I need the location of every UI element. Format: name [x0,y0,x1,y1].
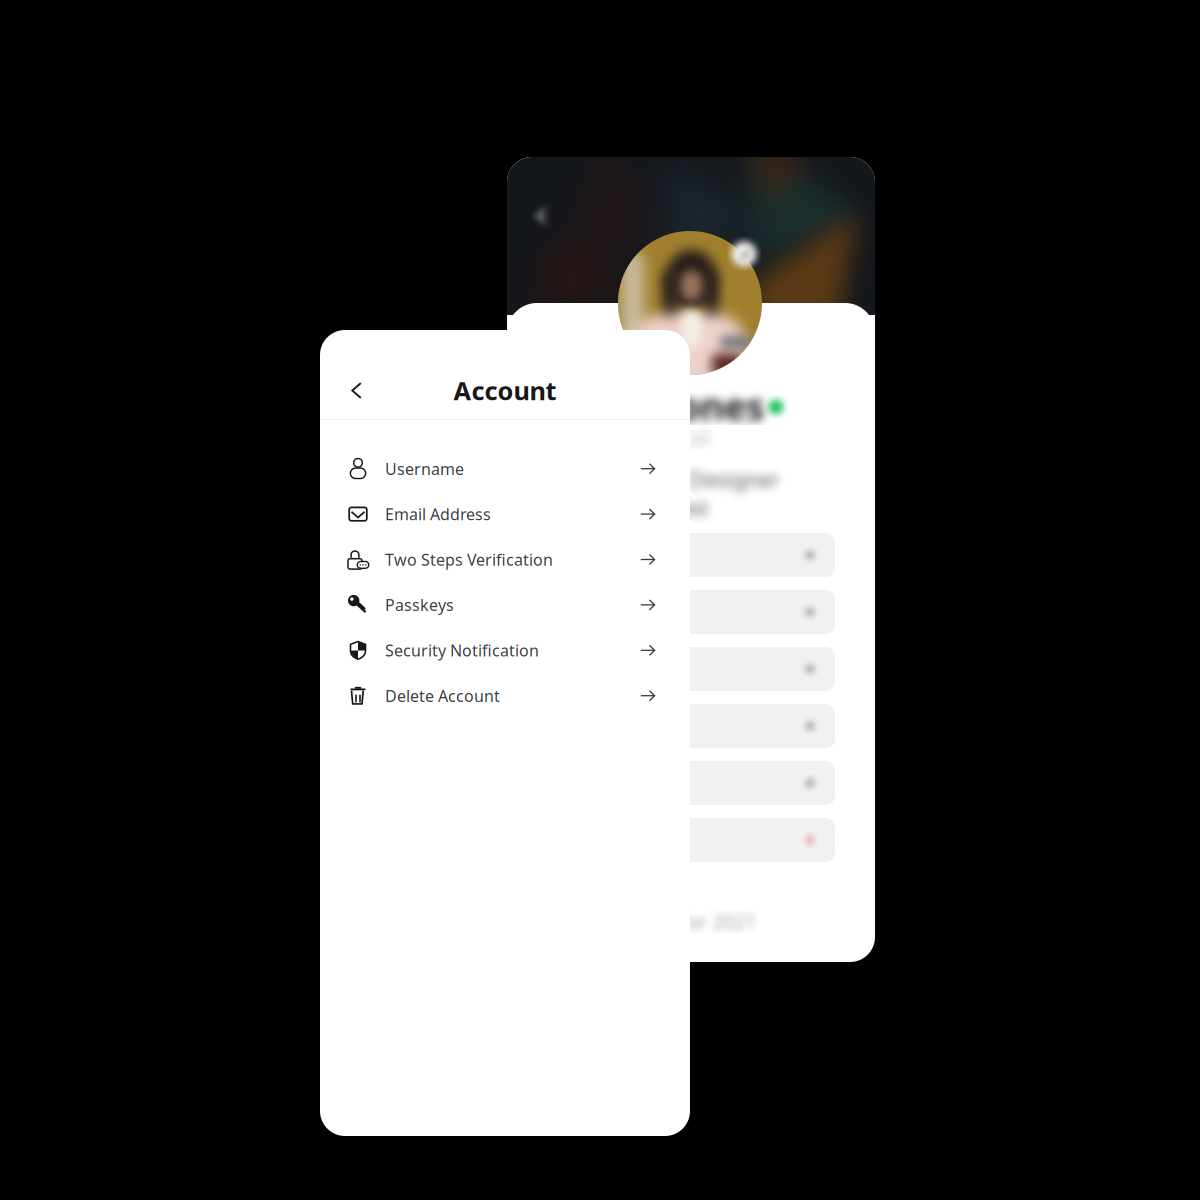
button[interactable]: Back [529,203,555,229]
staticText: Amara Jones [533,263,765,313]
staticText: Email Address [385,503,491,525]
button[interactable]: Username [320,446,690,491]
staticText: Coffee enthusiast [533,355,709,384]
staticText: Two Steps Verification [385,549,553,570]
staticText: Delete Account [385,685,500,706]
staticText: @amarajones_ui [533,315,710,345]
staticText: Username [385,458,464,479]
button[interactable]: Email Address [320,491,690,537]
button[interactable]: Passkeys [320,582,690,628]
button[interactable]: Edit profile photo [727,237,761,271]
button[interactable]: Edit profile [533,533,835,577]
button[interactable]: Privacy [533,704,835,748]
button[interactable]: Help [533,761,835,805]
button[interactable]: Notifications [533,647,835,691]
staticText: Security Notification [385,640,539,661]
button[interactable]: Delete Account [320,673,690,718]
staticText: Passkeys [385,594,454,615]
button[interactable]: Back [339,372,375,408]
button[interactable]: Account [533,590,835,634]
staticText: Account [453,374,556,407]
staticText: Member since Mar 2021 [533,804,756,830]
button[interactable]: Security Notification [320,628,690,673]
staticText: Product & Web Designer [533,327,780,355]
button[interactable]: Log out [533,818,835,862]
button[interactable]: Two Steps Verification [320,537,690,582]
